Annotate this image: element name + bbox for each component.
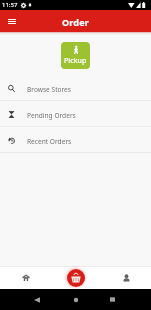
staticText: 11:57	[2, 1, 18, 9]
staticText: Recent Orders	[27, 137, 72, 146]
button[interactable]: Recents	[110, 297, 115, 302]
button[interactable]: Home	[73, 297, 79, 303]
button[interactable]: Menu	[3, 13, 20, 30]
staticText: Pickup	[64, 55, 87, 65]
button[interactable]: Home	[0, 266, 51, 289]
button[interactable]: Recent Orders	[0, 127, 151, 152]
button[interactable]: Pending Orders	[0, 101, 151, 126]
button[interactable]: Browse Stores	[0, 75, 151, 100]
button[interactable]: Cart	[67, 269, 85, 287]
staticText: Browse Stores	[27, 85, 71, 94]
button[interactable]: Profile	[101, 266, 151, 289]
staticText: Pending Orders	[27, 111, 76, 120]
button[interactable]: Pickup	[61, 42, 90, 69]
staticText: Order	[62, 16, 90, 28]
button[interactable]: Back	[34, 297, 40, 303]
